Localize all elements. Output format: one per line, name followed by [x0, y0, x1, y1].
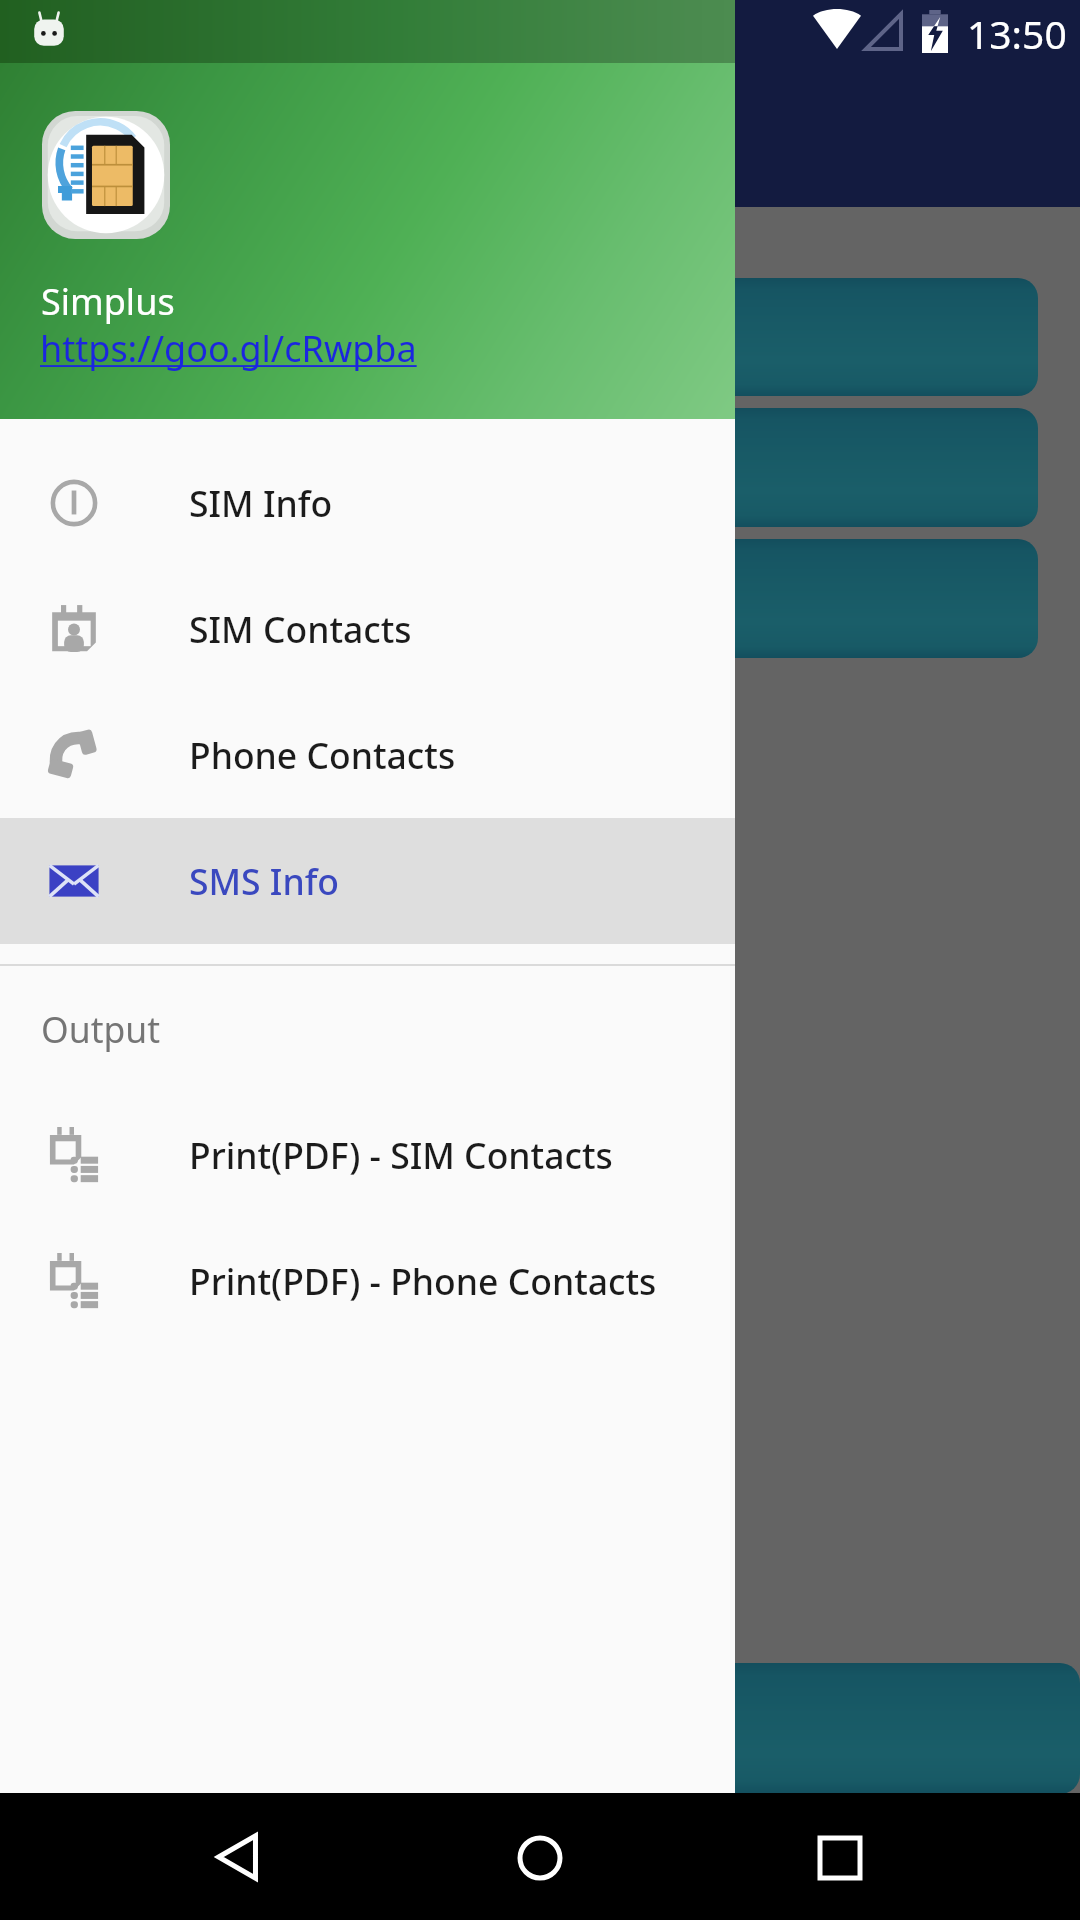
button[interactable]: Home	[517, 1835, 563, 1881]
staticText: Output	[41, 1005, 161, 1053]
button[interactable]: SIM Info	[0, 440, 735, 566]
staticText: 13:50	[967, 7, 1067, 60]
button[interactable]	[0, 539, 1038, 658]
staticText: SIM Contacts	[189, 605, 412, 653]
button[interactable]: Print(PDF) - Phone Contacts	[0, 1218, 735, 1344]
staticText: SMS Info	[189, 857, 340, 905]
button[interactable]: https://goo.gl/cRwpba	[40, 324, 417, 373]
button[interactable]: Recent apps	[820, 1838, 860, 1878]
button[interactable]: Phone Contacts	[0, 692, 735, 818]
button[interactable]: Back	[215, 1834, 261, 1880]
staticText: Phone Contacts	[189, 731, 456, 779]
button[interactable]: Print(PDF) - SIM Contacts	[0, 1092, 735, 1218]
button[interactable]	[0, 1663, 1080, 1794]
button[interactable]: SMS Info	[0, 818, 735, 944]
button[interactable]	[0, 408, 1038, 527]
button[interactable]: SIM Contacts	[0, 566, 735, 692]
staticText: SIM Info	[189, 479, 333, 527]
staticText: Print(PDF) - Phone Contacts	[189, 1257, 657, 1305]
staticText: Simplus	[41, 277, 175, 326]
button[interactable]	[0, 278, 1038, 396]
staticText: Print(PDF) - SIM Contacts	[189, 1131, 613, 1179]
